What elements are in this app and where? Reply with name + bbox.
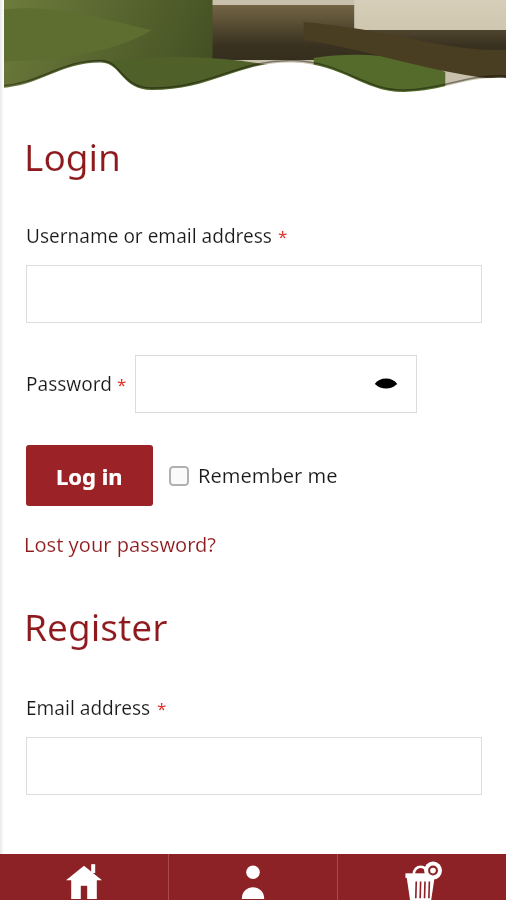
button[interactable]: Cart, 0 items xyxy=(338,854,506,900)
staticText: Email address xyxy=(26,695,151,721)
button[interactable]: My account xyxy=(169,854,337,900)
staticText: Login xyxy=(24,131,121,181)
button[interactable]: Show password xyxy=(372,370,400,398)
button[interactable] xyxy=(26,737,482,795)
staticText: Username or email address xyxy=(26,223,272,249)
button[interactable]: Home xyxy=(0,854,168,900)
staticText: * xyxy=(278,225,288,248)
staticText: Log in xyxy=(56,461,123,491)
staticText: * xyxy=(117,373,127,396)
button[interactable]: Lost your password? xyxy=(24,531,217,558)
button[interactable]: Remember me xyxy=(169,462,338,489)
staticText: Register xyxy=(24,601,168,651)
button[interactable]: Log in xyxy=(26,445,153,506)
button[interactable]: Show password xyxy=(135,355,417,413)
staticText: Remember me xyxy=(198,462,338,489)
staticText: Password xyxy=(26,371,112,397)
staticText: Lost your password? xyxy=(24,531,217,558)
button[interactable] xyxy=(26,265,482,323)
staticText: * xyxy=(157,697,167,720)
